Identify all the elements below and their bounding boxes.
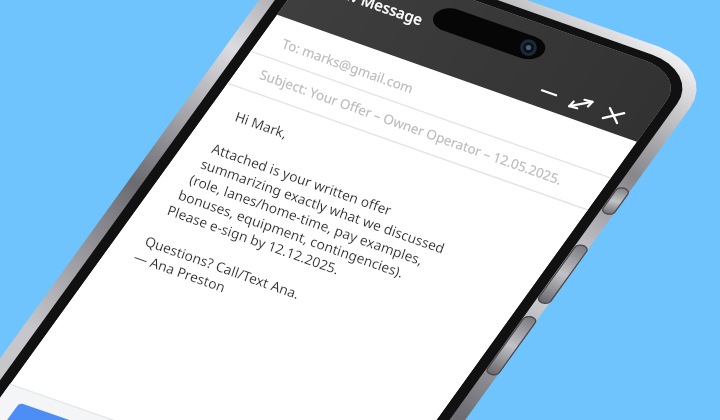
button[interactable]: New Message compose screen on phone [0,0,720,420]
